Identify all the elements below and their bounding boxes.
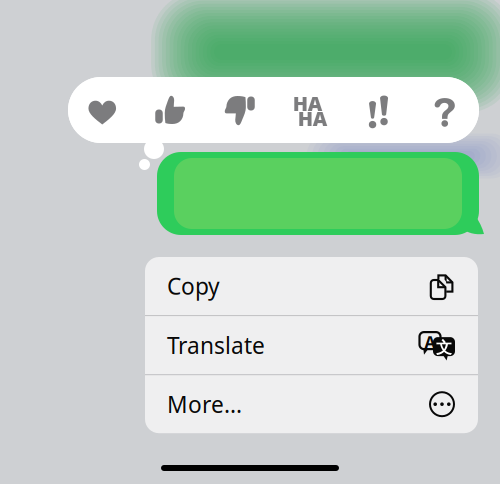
staticText: A [424, 331, 435, 353]
staticText: HA [293, 90, 323, 117]
button[interactable]: Haha [273, 77, 342, 143]
button[interactable]: More... [145, 375, 478, 433]
button[interactable]: Copy [145, 257, 478, 315]
button[interactable]: Exclamation [342, 77, 410, 143]
staticText: More... [167, 389, 242, 419]
staticText: Translate [167, 330, 265, 360]
button[interactable]: Question mark [410, 77, 479, 143]
button[interactable]: Translate [145, 316, 478, 374]
button[interactable]: Thumbs down [205, 77, 273, 143]
staticText: HA [298, 105, 328, 132]
button[interactable]: Love [68, 77, 136, 143]
staticText: 文 [436, 338, 452, 357]
button[interactable]: Thumbs up [136, 77, 205, 143]
staticText: Copy [167, 271, 220, 301]
